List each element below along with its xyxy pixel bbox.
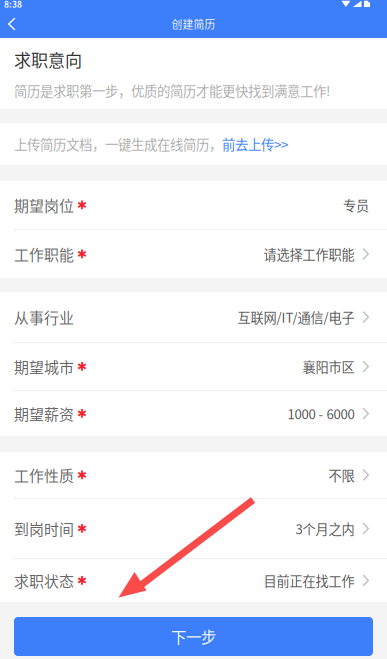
staticText: 求职意向 (14, 47, 82, 72)
button[interactable]: 下一步 (0, 602, 387, 659)
staticText: ✱ (77, 359, 87, 373)
staticText: 互联网/IT/通信/电子 (237, 307, 354, 326)
staticText: 请选择工作职能 (263, 244, 354, 263)
staticText: 8:38 (4, 0, 22, 10)
button[interactable]: 上传简历文档，一键生成在线简历， (0, 123, 387, 165)
staticText: 不限 (328, 465, 354, 484)
staticText: ✱ (77, 521, 87, 535)
staticText: 工作职能 (14, 243, 74, 265)
staticText: 期望岗位 (14, 194, 74, 216)
staticText: 3个月之内 (295, 519, 354, 538)
staticText: 目前正在找工作 (263, 571, 354, 590)
staticText: ✱ (77, 406, 87, 420)
staticText: 上传简历文档，一键生成在线简历， (14, 134, 222, 154)
button[interactable]: Back (0, 11, 32, 37)
staticText: 襄阳市区 (302, 357, 354, 376)
staticText: 工作性质 (14, 464, 74, 486)
staticText: 专员 (343, 195, 369, 214)
staticText: 1000 - 6000 (287, 404, 354, 423)
staticText: 求职状态 (14, 570, 74, 591)
button[interactable]: 工作性质 (0, 452, 387, 498)
staticText: 下一步 (171, 625, 216, 648)
staticText: 到岗时间 (14, 518, 74, 539)
button[interactable]: 期望城市 (0, 343, 387, 390)
staticText: 简历是求职第一步，优质的简历才能更快找到满意工作! (14, 81, 330, 100)
staticText: 期望城市 (14, 356, 74, 377)
staticText: 创建简历 (171, 16, 215, 32)
button[interactable]: 工作职能 (0, 230, 387, 278)
staticText: ✱ (77, 247, 87, 261)
staticText: ✱ (77, 468, 87, 482)
button[interactable]: 期望薪资 (0, 391, 387, 436)
button[interactable]: 期望岗位 (0, 181, 387, 229)
staticText: ✱ (77, 573, 87, 587)
button[interactable]: 从事行业 (0, 292, 387, 342)
button[interactable]: 求职状态 (0, 559, 387, 602)
staticText: 期望薪资 (14, 403, 74, 424)
staticText: 前去上传>> (222, 134, 288, 154)
staticText: ✱ (77, 198, 87, 212)
button[interactable]: 到岗时间 (0, 499, 387, 558)
staticText: 从事行业 (14, 306, 74, 328)
